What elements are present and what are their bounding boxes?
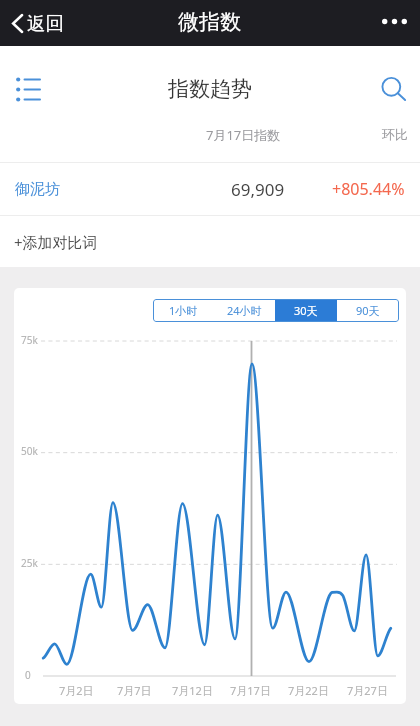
staticText: 7月17日 [230,683,271,698]
button[interactable]: +添加对比词 [0,216,420,267]
staticText: 1小时 [169,303,198,318]
staticText: 50k [21,444,38,458]
staticText: 30天 [294,303,318,318]
staticText: 7月12日 [172,683,213,698]
button[interactable]: 御泥坊 [0,163,420,215]
button[interactable]: List view [0,60,56,118]
staticText: 返回 [27,12,64,35]
button[interactable]: 30天 [275,299,337,322]
staticText: +添加对比词 [14,232,98,252]
staticText: 90天 [356,303,380,318]
staticText: 75k [21,333,38,347]
staticText: 0 [25,668,31,682]
staticText: 微指数 [178,9,241,35]
button[interactable]: 24小时 [214,299,275,322]
staticText: +805.44% [332,178,405,200]
staticText: 7月27日 [347,683,388,698]
staticText: 环比 [382,126,408,142]
staticText: 7月7日 [117,683,152,698]
staticText: 7月2日 [59,683,94,698]
staticText: 69,909 [231,178,285,201]
button[interactable]: Search [367,60,420,118]
button[interactable]: More options [372,0,420,46]
staticText: 24小时 [227,303,262,318]
staticText: 7月17日指数 [206,126,281,144]
button[interactable]: 1小时 [153,299,214,322]
staticText: 御泥坊 [15,180,60,199]
staticText: 25k [21,556,38,570]
button[interactable]: 90天 [337,299,399,322]
staticText: 7月22日 [288,683,329,698]
staticText: 指数趋势 [168,76,252,102]
button[interactable]: 返回 [0,0,76,46]
